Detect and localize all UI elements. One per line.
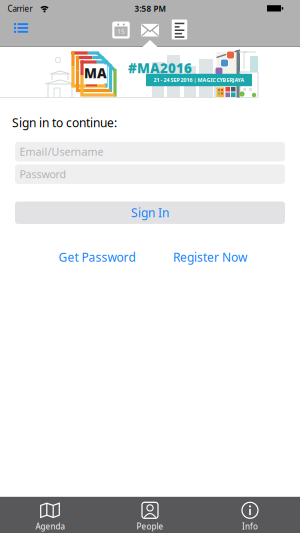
staticText: Agenda bbox=[35, 521, 64, 532]
staticText: Carrier bbox=[7, 3, 32, 14]
staticText: People bbox=[136, 521, 163, 532]
staticText: 15 bbox=[117, 27, 125, 36]
staticText: Register Now bbox=[173, 249, 247, 265]
button[interactable]: People bbox=[100, 497, 200, 533]
button[interactable]: Sign In bbox=[15, 201, 285, 224]
staticText: Sign In bbox=[131, 205, 169, 221]
staticText: Email/Username bbox=[19, 145, 103, 159]
button[interactable]: Messages bbox=[141, 24, 159, 36]
button[interactable]: Get Password bbox=[37, 247, 157, 267]
staticText: #MA2016 bbox=[128, 59, 192, 77]
staticText: Info bbox=[242, 521, 258, 532]
button[interactable]: Menu bbox=[6, 16, 38, 42]
button[interactable]: Calendar bbox=[112, 21, 130, 38]
button[interactable]: Register Now bbox=[150, 247, 270, 267]
staticText: MA bbox=[84, 64, 107, 82]
staticText: Password bbox=[19, 167, 66, 181]
staticText: 21 - 24 SEP 2016 | MAGIC CYBERJAYA bbox=[153, 76, 244, 84]
staticText: Sign in to continue: bbox=[12, 114, 117, 130]
button[interactable]: Agenda bbox=[0, 497, 100, 533]
staticText: Get Password bbox=[58, 249, 135, 265]
button[interactable]: News bbox=[172, 19, 187, 39]
button[interactable]: Info bbox=[200, 497, 300, 533]
staticText: 3:58 PM bbox=[134, 3, 165, 14]
